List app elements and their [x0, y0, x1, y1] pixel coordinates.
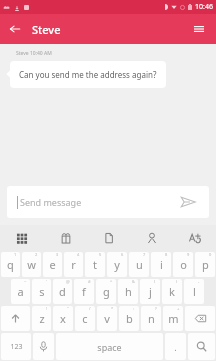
staticText: @	[66, 279, 70, 284]
button[interactable]: d	[53, 279, 72, 304]
button[interactable]: Contact	[130, 225, 173, 251]
button[interactable]: s	[32, 279, 51, 304]
button[interactable]: i	[151, 252, 171, 277]
button[interactable]: t	[85, 252, 105, 277]
staticText: *	[111, 306, 114, 311]
staticText: 10:46	[195, 2, 213, 12]
button[interactable]: Stickers	[44, 225, 87, 251]
staticText: 9	[187, 252, 190, 257]
button[interactable]: v	[97, 306, 117, 331]
staticText: u	[136, 257, 143, 272]
button[interactable]: Translate	[173, 225, 216, 251]
staticText: d	[59, 284, 66, 299]
button[interactable]: Menu	[182, 14, 216, 44]
staticText: 6	[121, 252, 124, 257]
button[interactable]	[188, 333, 215, 360]
button[interactable]: c	[75, 306, 95, 331]
button[interactable]: e	[43, 252, 62, 277]
staticText: z	[39, 311, 45, 326]
staticText: 8	[165, 252, 168, 257]
staticText: /	[89, 306, 91, 311]
button[interactable]: q	[1, 252, 20, 277]
button[interactable]: space	[56, 333, 163, 360]
staticText: +	[177, 306, 180, 311]
button[interactable]: Send	[177, 191, 199, 213]
button[interactable]: a	[11, 279, 30, 304]
button[interactable]: Apps	[0, 225, 44, 251]
button[interactable]: m	[163, 306, 183, 331]
staticText: )	[176, 279, 178, 284]
button[interactable]: h	[118, 279, 138, 304]
button[interactable]: 123	[1, 333, 31, 360]
button[interactable]: l	[184, 279, 204, 304]
staticText: 123	[10, 342, 23, 352]
staticText: Steve 10:40 AM	[16, 50, 52, 57]
button[interactable]	[185, 306, 215, 331]
other: Backspace	[184, 305, 216, 332]
staticText: 3	[56, 252, 59, 257]
staticText: (	[154, 279, 156, 284]
button[interactable]: n	[141, 306, 161, 331]
button[interactable]: k	[162, 279, 182, 304]
staticText: '	[46, 279, 47, 284]
staticText: g	[103, 284, 110, 299]
staticText: :	[133, 306, 135, 311]
button[interactable]: u	[129, 252, 149, 277]
staticText: 4	[77, 252, 80, 257]
staticText: Steve	[32, 22, 61, 37]
staticText: Can you send me the address again?	[19, 69, 157, 80]
other: Voice input	[32, 332, 55, 361]
button[interactable]: g	[96, 279, 116, 304]
staticText: 7	[143, 252, 146, 257]
button[interactable]: z	[32, 306, 51, 331]
staticText: b	[126, 311, 133, 326]
button[interactable]: w	[22, 252, 41, 277]
staticText: v	[104, 311, 110, 326]
button[interactable]: r	[64, 252, 83, 277]
staticText: k	[169, 284, 175, 299]
staticText: &	[132, 279, 135, 284]
button[interactable]	[33, 333, 54, 360]
staticText: a	[17, 284, 24, 299]
button[interactable]: p	[195, 252, 215, 277]
staticText: l	[193, 284, 196, 299]
staticText: 2	[35, 252, 38, 257]
staticText: p	[202, 257, 209, 272]
staticText: f	[82, 284, 86, 299]
staticText: q	[7, 257, 14, 272]
staticText: space	[97, 341, 122, 353]
staticText: 5	[99, 252, 102, 257]
staticText: i	[160, 257, 163, 272]
staticText: o	[180, 257, 187, 272]
button[interactable]: .	[165, 333, 186, 360]
button[interactable]: o	[173, 252, 193, 277]
staticText: 0	[209, 252, 212, 257]
other: Search	[187, 332, 216, 361]
button[interactable]: f	[74, 279, 94, 304]
staticText: 1	[14, 252, 17, 257]
staticText: #	[88, 279, 91, 284]
button[interactable]: y	[107, 252, 127, 277]
staticText: "	[67, 306, 69, 311]
staticText: ~	[24, 279, 27, 284]
staticText: y	[114, 257, 120, 272]
other: Shift	[0, 305, 31, 332]
button[interactable]: Clipboard	[87, 225, 130, 251]
staticText: -	[198, 279, 200, 284]
staticText: x	[60, 311, 66, 326]
button[interactable]: Back	[0, 14, 30, 44]
button[interactable]	[1, 306, 30, 331]
staticText: h	[125, 284, 132, 299]
staticText: m	[168, 311, 179, 326]
staticText: s	[39, 284, 45, 299]
button[interactable]: x	[53, 306, 73, 331]
button[interactable]: b	[119, 306, 139, 331]
button[interactable]: j	[140, 279, 160, 304]
staticText: !	[46, 306, 48, 311]
staticText: e	[49, 257, 56, 272]
staticText: c	[82, 311, 88, 326]
staticText: .	[174, 341, 177, 353]
staticText: r	[71, 257, 76, 272]
staticText: n	[148, 311, 155, 326]
button[interactable]: Send message	[7, 186, 209, 218]
